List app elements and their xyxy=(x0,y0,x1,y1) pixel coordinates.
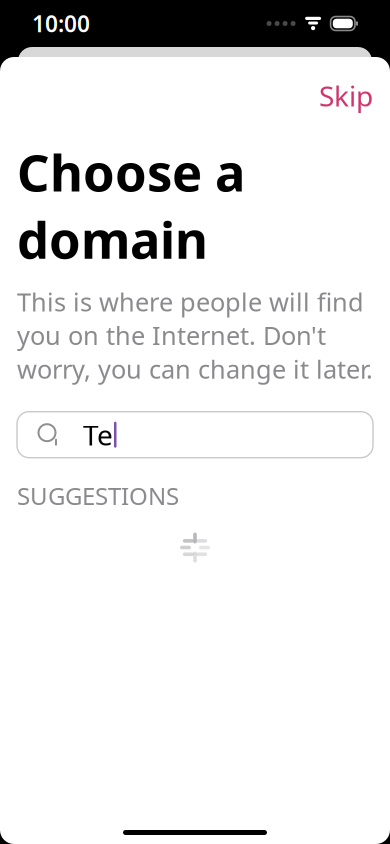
staticText: Skip xyxy=(319,77,373,114)
staticText: This is where people will find you on th… xyxy=(17,285,373,386)
button[interactable]: Skip xyxy=(315,71,377,120)
staticText: 10:00 xyxy=(32,8,90,38)
staticText: SUGGESTIONS xyxy=(17,480,179,512)
staticText: Te xyxy=(83,416,113,453)
button[interactable]: Te xyxy=(17,412,373,458)
staticText: Choose a domain xyxy=(17,138,245,273)
